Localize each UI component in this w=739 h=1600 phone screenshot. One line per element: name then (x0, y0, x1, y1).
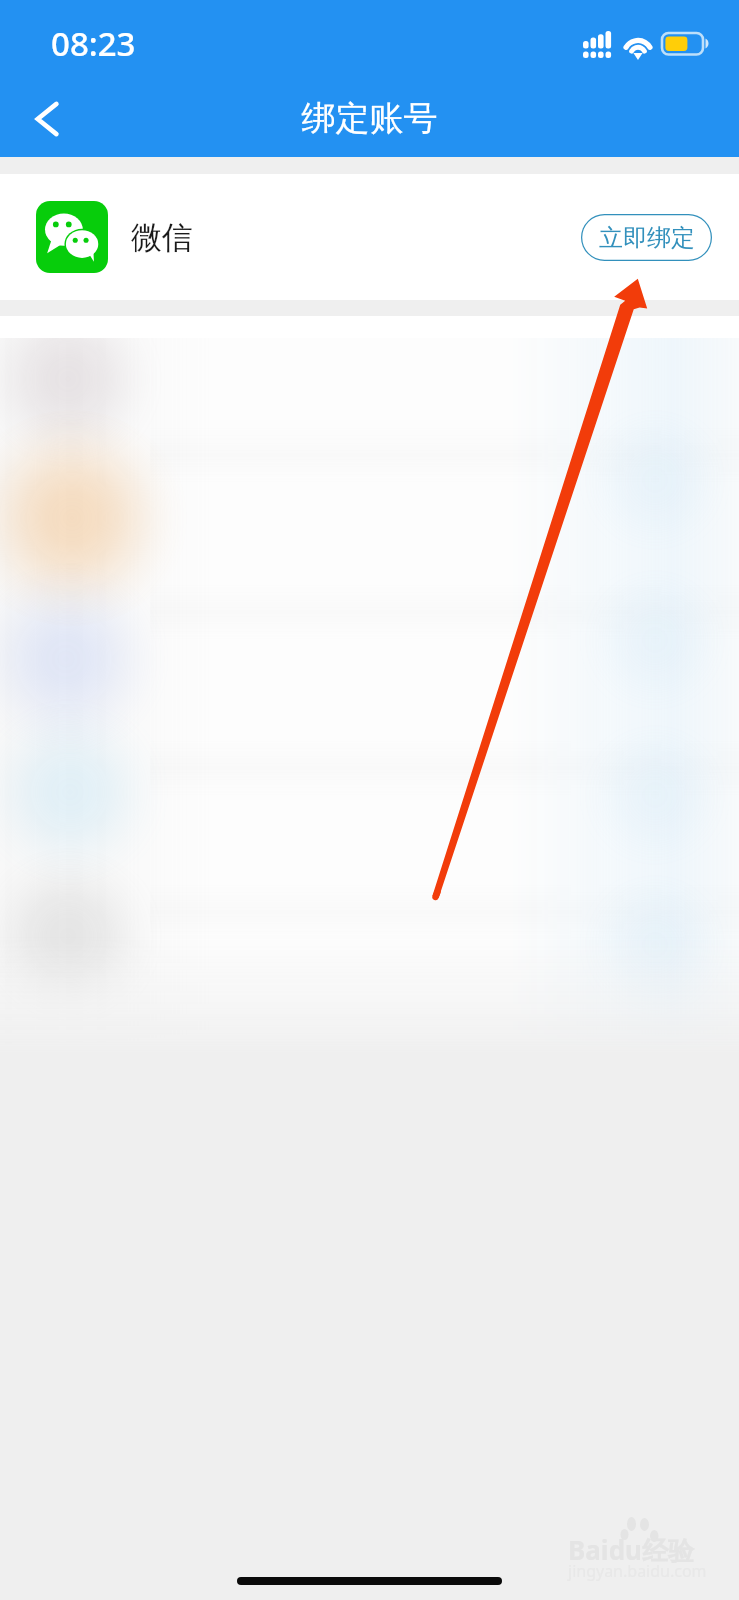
staticText: 立即绑定 (599, 223, 695, 253)
button[interactable]: 立即绑定 (581, 214, 712, 261)
staticText: Baidu经验 (568, 1532, 694, 1568)
staticText: 绑定账号 (0, 97, 739, 140)
staticText: 微信 (131, 218, 193, 257)
button[interactable]: 微信 (0, 174, 739, 300)
button[interactable]: Back (11, 84, 81, 153)
staticText: 08:23 (51, 21, 136, 66)
